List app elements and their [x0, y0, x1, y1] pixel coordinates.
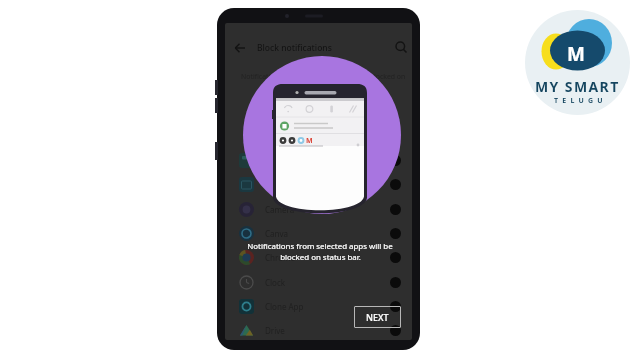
staticText: M: [306, 136, 313, 146]
staticText: Clock: [265, 277, 286, 288]
button[interactable]: Chrome: [225, 245, 412, 269]
staticText: Block notifications: [257, 42, 332, 54]
staticText: Calendar: [265, 179, 299, 190]
button[interactable]: Calendar: [225, 172, 412, 196]
staticText: Clone App: [265, 301, 304, 312]
button[interactable]: Clock: [225, 270, 412, 294]
staticText: M: [567, 41, 585, 67]
staticText: NEXT: [366, 311, 389, 323]
button[interactable]: Canva: [225, 221, 412, 245]
button[interactable]: Back: [232, 40, 248, 56]
staticText: T E L U G U: [554, 96, 604, 106]
staticText: Calculator: [265, 155, 303, 166]
button[interactable]: Drive: [225, 318, 412, 340]
staticText: Canva: [265, 228, 289, 239]
button[interactable]: Search: [394, 40, 409, 55]
button[interactable]: Calculator: [225, 148, 412, 172]
staticText: MY SMART: [535, 77, 620, 96]
staticText: Drive: [265, 325, 285, 336]
button[interactable]: Clone App: [225, 294, 412, 318]
staticText: Notifications from selected apps will be…: [241, 72, 406, 81]
staticText: Notifications from selected apps will be: [247, 241, 393, 252]
staticText: Chrome: [265, 252, 295, 263]
button[interactable]: NEXT: [354, 306, 401, 328]
button[interactable]: Camera: [225, 197, 412, 221]
staticText: Camera: [265, 204, 295, 215]
staticText: blocked on status bar.: [280, 252, 361, 263]
